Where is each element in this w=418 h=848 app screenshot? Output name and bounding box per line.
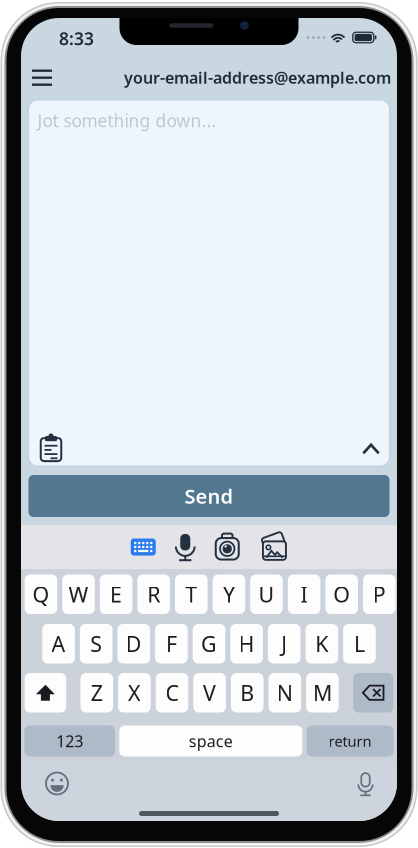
staticText: space [189,730,233,752]
staticText: G [201,630,217,658]
staticText: T [185,580,197,608]
staticText: O [333,580,350,608]
button[interactable]: U [250,574,283,614]
staticText: Y [223,580,235,608]
button[interactable]: Shift [25,673,66,712]
button[interactable]: S [80,624,112,663]
button[interactable]: P [363,574,396,614]
button[interactable]: M [306,673,339,712]
button[interactable]: O [325,574,358,614]
button[interactable]: K [305,624,338,663]
staticText: N [277,679,293,707]
staticText: X [128,679,141,707]
staticText: F [166,630,177,658]
button[interactable]: F [155,624,188,663]
button[interactable]: W [62,574,95,614]
staticText: S [90,630,102,658]
button[interactable]: space [119,725,302,756]
staticText: H [239,630,255,658]
staticText: K [315,630,328,658]
staticText: W [68,580,88,608]
staticText: I [301,580,308,608]
staticText: V [203,679,216,707]
staticText: B [240,679,254,707]
button[interactable]: V [193,673,226,712]
button[interactable]: Collapse [361,437,380,461]
button[interactable]: Send [28,475,389,517]
button[interactable]: return [307,725,394,756]
button[interactable]: Keyboard [131,538,156,555]
button[interactable]: G [193,624,225,663]
staticText: return [329,731,372,751]
staticText: U [258,580,274,608]
button[interactable]: Paste [40,437,62,461]
staticText: 123 [56,730,83,752]
button[interactable]: Dictate [175,533,195,560]
button[interactable]: Camera [215,533,240,560]
staticText: your-email-address@example.com [124,67,391,88]
staticText: Jot something down... [37,109,216,132]
button[interactable]: Menu [21,57,63,97]
button[interactable]: C [156,673,188,712]
staticText: E [110,580,122,608]
button[interactable]: L [343,624,376,663]
button[interactable]: X [118,673,151,712]
button[interactable]: T [175,574,208,614]
button[interactable]: Photos [259,533,287,560]
staticText: C [165,679,178,707]
button[interactable]: Dictation [357,772,374,795]
button[interactable]: Z [80,673,113,712]
button[interactable]: J [268,624,300,663]
staticText: L [354,630,365,658]
staticText: Q [32,580,49,608]
staticText: P [373,580,386,608]
staticText: D [126,630,142,658]
staticText: Send [184,483,233,509]
staticText: M [313,679,332,707]
button[interactable]: A [42,624,75,663]
button[interactable]: D [117,624,150,663]
button[interactable]: R [137,574,170,614]
button[interactable]: Y [213,574,245,614]
button[interactable]: N [268,673,301,712]
staticText: Z [91,679,103,707]
button[interactable]: H [230,624,263,663]
staticText: R [147,580,160,608]
button[interactable]: Emoji [45,771,69,795]
staticText: 8:33 [59,27,94,50]
staticText: J [281,630,287,658]
button[interactable]: E [100,574,132,614]
button[interactable]: Q [25,574,57,614]
staticText: A [52,630,66,658]
button[interactable]: I [288,574,320,614]
button[interactable]: Backspace [353,673,393,712]
button[interactable]: B [231,673,263,712]
button[interactable]: 123 [24,725,115,756]
